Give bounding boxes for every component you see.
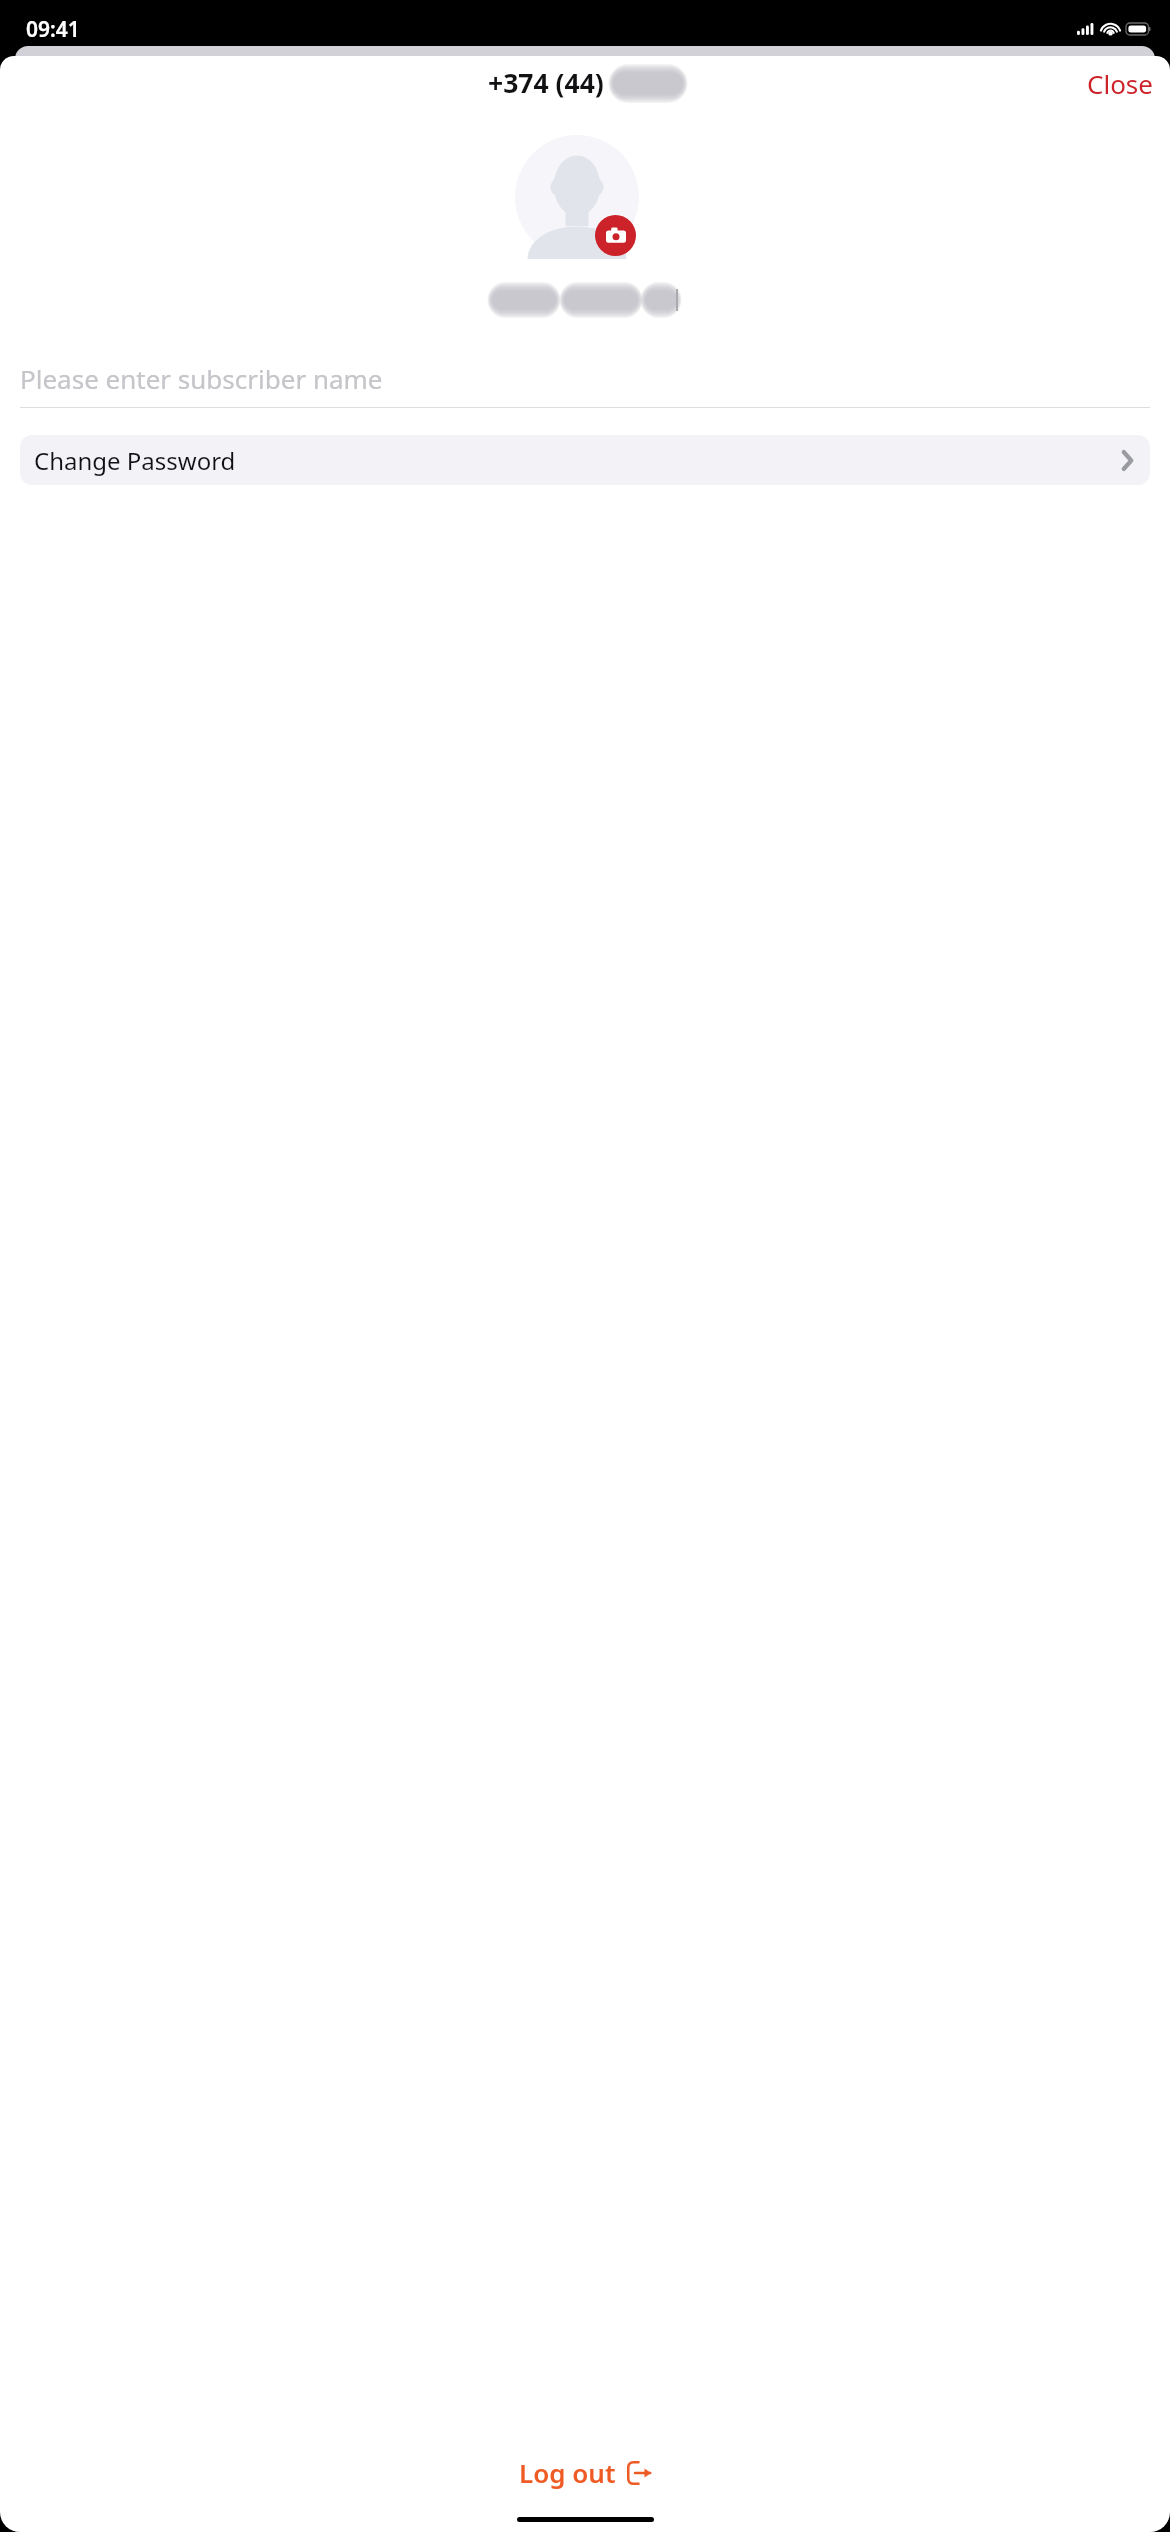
- button[interactable]: Close: [1070, 57, 1170, 110]
- button[interactable]: Change Password: [20, 435, 1150, 485]
- button[interactable]: Change photo: [595, 215, 636, 256]
- staticText: Please enter subscriber name: [20, 361, 383, 396]
- staticText: Log out: [519, 2455, 616, 2490]
- staticText: +374 (44): [488, 65, 604, 101]
- staticText: Change Password: [34, 444, 236, 477]
- staticText: 09:41: [26, 15, 80, 44]
- staticText: Close: [1087, 66, 1153, 101]
- button[interactable]: Log out: [503, 2445, 668, 2500]
- button[interactable]: Please enter subscriber name: [20, 361, 1150, 408]
